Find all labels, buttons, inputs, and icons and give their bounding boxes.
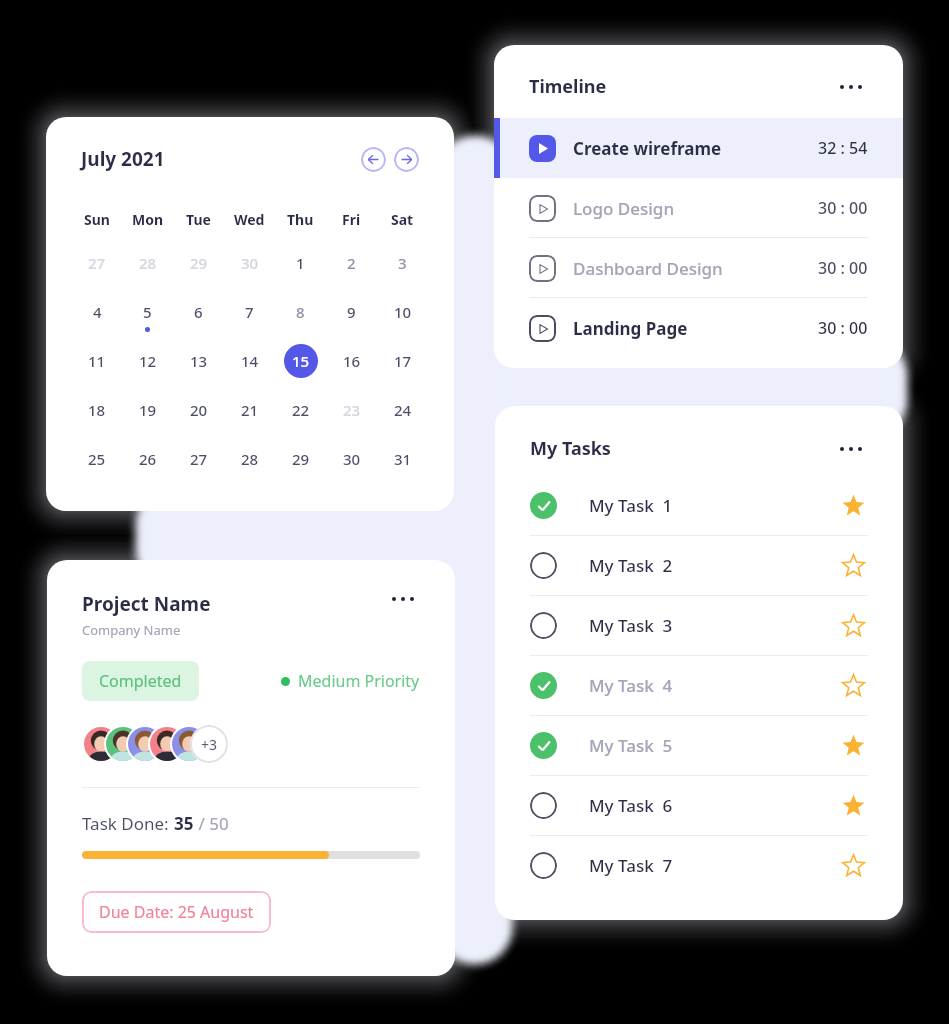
button[interactable]: My Task 7 — [495, 835, 903, 895]
staticText: 30 : 00 — [818, 197, 868, 219]
button[interactable]: 24 — [394, 400, 412, 420]
staticText: 30 : 00 — [818, 257, 868, 279]
button[interactable]: My Task 4 — [495, 655, 903, 715]
button[interactable]: 28 — [241, 449, 259, 469]
button[interactable]: Team member — [172, 727, 206, 761]
button[interactable]: Logo Design — [494, 178, 903, 238]
button[interactable]: 1 — [296, 253, 305, 273]
button[interactable]: 20 — [190, 400, 208, 420]
button[interactable]: My Task 6 — [495, 775, 903, 835]
button[interactable]: Favorite — [838, 550, 868, 580]
button[interactable]: 15 — [284, 344, 318, 378]
button[interactable]: Favorite — [838, 610, 868, 640]
button[interactable]: 5 — [143, 302, 152, 322]
button[interactable]: 19 — [139, 400, 157, 420]
button[interactable]: My Task 2 — [495, 535, 903, 595]
button[interactable]: 21 — [241, 400, 259, 420]
button[interactable]: Favorite — [838, 730, 868, 760]
staticText: Fri — [342, 210, 361, 229]
staticText: My Task 3 — [589, 614, 673, 637]
button[interactable]: 4 — [93, 302, 102, 322]
staticText: Timeline — [529, 74, 607, 99]
button[interactable]: Team member — [150, 727, 184, 761]
staticText: 35 — [174, 812, 194, 835]
staticText: 32 : 54 — [818, 137, 868, 159]
staticText: Sun — [84, 210, 110, 229]
button[interactable]: Favorite — [838, 790, 868, 820]
button[interactable]: More options — [834, 79, 868, 95]
button[interactable]: Completed — [82, 661, 199, 701]
button[interactable]: Team member — [84, 727, 118, 761]
button[interactable]: 31 — [394, 449, 412, 469]
staticText: Dashboard Design — [573, 257, 723, 280]
button[interactable]: Due Date: 25 August — [82, 891, 271, 933]
button[interactable]: Next month — [394, 147, 419, 172]
button[interactable]: Favorite — [838, 850, 868, 880]
staticText: My Tasks — [530, 436, 611, 461]
button[interactable]: Dashboard Design — [494, 238, 903, 298]
staticText: Wed — [234, 210, 265, 229]
button[interactable]: 25 — [88, 449, 106, 469]
staticText: 15 — [292, 351, 310, 371]
staticText: Mon — [132, 210, 164, 229]
button[interactable]: My Task 3 — [495, 595, 903, 655]
button[interactable]: 27 — [190, 449, 208, 469]
button[interactable]: My Task 1 — [495, 475, 903, 535]
staticText: / 50 — [194, 812, 229, 835]
button[interactable]: 8 — [296, 302, 305, 322]
button[interactable]: 28 — [139, 253, 157, 273]
button[interactable]: More options — [834, 441, 868, 457]
button[interactable]: 13 — [190, 351, 208, 371]
button[interactable]: 23 — [343, 400, 361, 420]
staticText: 30 : 00 — [818, 317, 868, 339]
button[interactable]: 29 — [190, 253, 208, 273]
button[interactable]: 7 — [245, 302, 254, 322]
button[interactable]: 30 — [241, 253, 259, 273]
button[interactable]: 27 — [88, 253, 106, 273]
button[interactable]: 6 — [194, 302, 203, 322]
button[interactable]: 18 — [88, 400, 106, 420]
staticText: My Task 6 — [589, 794, 673, 817]
staticText: My Task 1 — [589, 494, 673, 517]
button[interactable]: 3 — [398, 253, 407, 273]
staticText: Landing Page — [573, 317, 688, 340]
staticText: Create wireframe — [573, 137, 722, 160]
button[interactable]: 12 — [139, 351, 157, 371]
staticText: Medium Priority — [298, 670, 420, 692]
button[interactable]: More options — [386, 591, 420, 607]
staticText: My Task 2 — [589, 554, 673, 577]
staticText: Project Name — [82, 591, 211, 617]
staticText: Sat — [391, 210, 414, 229]
staticText: Logo Design — [573, 197, 675, 220]
button[interactable]: My Task 5 — [495, 715, 903, 775]
button[interactable]: 11 — [88, 351, 106, 371]
staticText: +3 — [201, 735, 218, 754]
button[interactable]: 22 — [292, 400, 310, 420]
button[interactable]: 30 — [343, 449, 361, 469]
button[interactable]: 17 — [394, 351, 412, 371]
staticText: My Task 5 — [589, 734, 673, 757]
staticText: Thu — [287, 210, 314, 229]
button[interactable]: 14 — [241, 351, 259, 371]
button[interactable]: Favorite — [838, 490, 868, 520]
button[interactable]: Landing Page — [494, 298, 903, 358]
button[interactable]: 9 — [347, 302, 356, 322]
button[interactable]: Team member — [128, 727, 162, 761]
staticText: Completed — [99, 670, 182, 692]
button[interactable]: Create wireframe — [494, 118, 903, 178]
button[interactable]: +3 — [190, 725, 228, 763]
button[interactable]: Team member — [106, 727, 140, 761]
staticText: Company Name — [82, 621, 181, 639]
staticText: Due Date: 25 August — [99, 901, 254, 923]
button[interactable]: 10 — [394, 302, 412, 322]
staticText: Tue — [186, 210, 211, 229]
button[interactable]: 2 — [347, 253, 356, 273]
button[interactable]: 16 — [343, 351, 361, 371]
staticText: My Task 4 — [589, 674, 673, 697]
button[interactable]: Previous month — [361, 147, 386, 172]
button[interactable]: 29 — [292, 449, 310, 469]
button[interactable]: Favorite — [838, 670, 868, 700]
button[interactable]: 26 — [139, 449, 157, 469]
staticText: Task Done: — [82, 812, 174, 835]
staticText: July 2021 — [81, 146, 165, 172]
